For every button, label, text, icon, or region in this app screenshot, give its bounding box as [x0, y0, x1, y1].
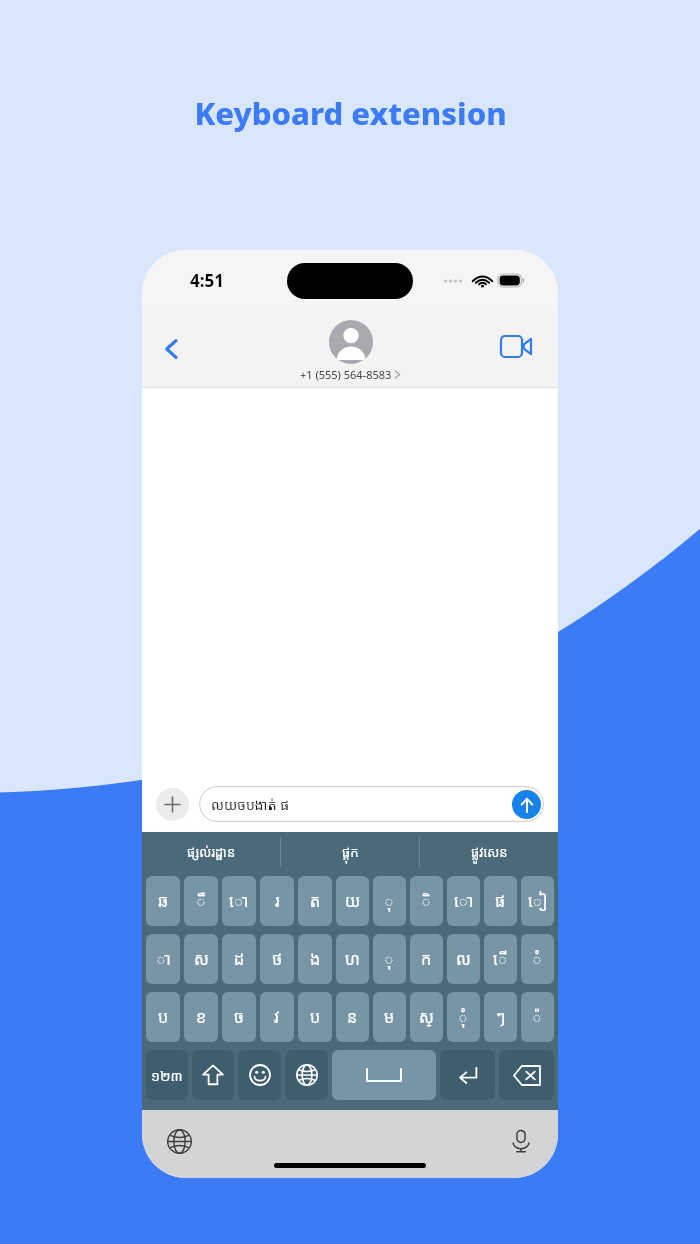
- staticText: យ: [345, 890, 361, 912]
- staticText: ច: [234, 1006, 244, 1028]
- button[interactable]: ផ្លូវសេន: [420, 832, 558, 872]
- staticText: ង: [310, 948, 321, 970]
- staticText: ល: [456, 948, 471, 970]
- button[interactable]: ៉: [521, 992, 554, 1042]
- button[interactable]: ដ: [222, 934, 256, 984]
- button[interactable]: ប: [298, 992, 332, 1042]
- button[interactable]: ផ្ដុក: [281, 832, 419, 872]
- button[interactable]: ឺ: [184, 876, 218, 926]
- button[interactable]: វ: [260, 992, 294, 1042]
- staticText: ខ: [196, 1006, 207, 1028]
- button[interactable]: ល: [447, 934, 480, 984]
- button[interactable]: រ: [260, 876, 294, 926]
- staticText: ៉: [532, 1006, 543, 1028]
- staticText: ផ: [495, 890, 506, 912]
- staticText: ើ: [493, 948, 508, 970]
- button[interactable]: ុ: [373, 876, 406, 926]
- button[interactable]: ស: [184, 934, 218, 984]
- staticText: ថ: [272, 948, 283, 970]
- staticText: លយចបងាត់ ផ: [211, 795, 290, 814]
- staticText: +1 (555) 564-8583: [300, 367, 392, 382]
- staticText: ត: [310, 890, 321, 912]
- button[interactable]: ថ: [260, 934, 294, 984]
- staticText: ំ: [532, 948, 543, 970]
- button[interactable]: ផ: [484, 876, 517, 926]
- staticText: ស: [194, 948, 209, 970]
- staticText: រ: [275, 890, 280, 912]
- button[interactable]: ផ្សល់រដ្ឋាន: [142, 832, 280, 872]
- button[interactable]: ន: [336, 992, 369, 1042]
- button[interactable]: េា: [222, 876, 256, 926]
- button[interactable]: លយចបងាត់ ផ: [199, 786, 544, 822]
- button[interactable]: +1 (555) 564-8583: [300, 320, 401, 382]
- staticText: ិ: [421, 890, 432, 912]
- button[interactable]: Numbers: [146, 1050, 188, 1100]
- button[interactable]: Return: [440, 1050, 495, 1100]
- staticText: ហ: [345, 948, 360, 970]
- button[interactable]: Video call: [496, 326, 536, 366]
- staticText: ប: [310, 1006, 321, 1028]
- button[interactable]: ក: [410, 934, 443, 984]
- staticText: ោ: [454, 890, 474, 912]
- button[interactable]: ៗ: [484, 992, 517, 1042]
- staticText: ម: [384, 1006, 395, 1028]
- button[interactable]: Add attachment: [156, 788, 189, 821]
- button[interactable]: ខ: [184, 992, 218, 1042]
- staticText: ក: [421, 948, 432, 970]
- staticText: វ: [274, 1006, 280, 1028]
- button[interactable]: Send: [512, 790, 541, 819]
- staticText: ផ្លូវសេន: [471, 843, 508, 861]
- staticText: ប: [158, 1006, 169, 1028]
- button[interactable]: Back: [150, 327, 194, 371]
- staticText: ុ: [384, 890, 395, 912]
- button[interactable]: ើ: [484, 934, 517, 984]
- button[interactable]: យ: [336, 876, 369, 926]
- staticText: េា: [229, 890, 249, 912]
- staticText: ឺ: [196, 890, 207, 912]
- staticText: ផ្ដុក: [342, 843, 359, 861]
- button[interactable]: Change language: [285, 1050, 328, 1100]
- staticText: ដ: [234, 948, 245, 970]
- button[interactable]: ត: [298, 876, 332, 926]
- staticText: ផ្សល់រដ្ឋាន: [187, 843, 236, 861]
- button[interactable]: ប: [146, 992, 180, 1042]
- button[interactable]: ឆ: [146, 876, 180, 926]
- button[interactable]: ម: [373, 992, 406, 1042]
- button[interactable]: Globe: [160, 1122, 198, 1160]
- button[interactable]: ុ: [373, 934, 406, 984]
- button[interactable]: ង: [298, 934, 332, 984]
- button[interactable]: ស្: [410, 992, 443, 1042]
- button[interactable]: Shift: [192, 1050, 234, 1100]
- button[interactable]: ហ: [336, 934, 369, 984]
- button[interactable]: Dictation: [502, 1122, 540, 1160]
- button[interactable]: ច: [222, 992, 256, 1042]
- staticText: ១២៣: [151, 1066, 183, 1085]
- button[interactable]: Backspace: [499, 1050, 554, 1100]
- staticText: ឆ: [158, 890, 169, 912]
- staticText: ៀ: [528, 890, 548, 912]
- staticText: 4:51: [190, 269, 224, 292]
- staticText: ុ: [384, 948, 395, 970]
- staticText: ុំ: [458, 1006, 469, 1028]
- staticText: ៗ: [496, 1006, 506, 1028]
- staticText: ស្: [419, 1006, 434, 1028]
- staticText: Keyboard extension: [194, 92, 507, 134]
- button[interactable]: ុំ: [447, 992, 480, 1042]
- button[interactable]: Emoji: [238, 1050, 281, 1100]
- staticText: ន: [347, 1006, 358, 1028]
- staticText: ា: [156, 948, 171, 970]
- button[interactable]: ា: [146, 934, 180, 984]
- button[interactable]: ិ: [410, 876, 443, 926]
- button[interactable]: Space: [332, 1050, 436, 1100]
- button[interactable]: ៀ: [521, 876, 554, 926]
- button[interactable]: ោ: [447, 876, 480, 926]
- button[interactable]: ំ: [521, 934, 554, 984]
